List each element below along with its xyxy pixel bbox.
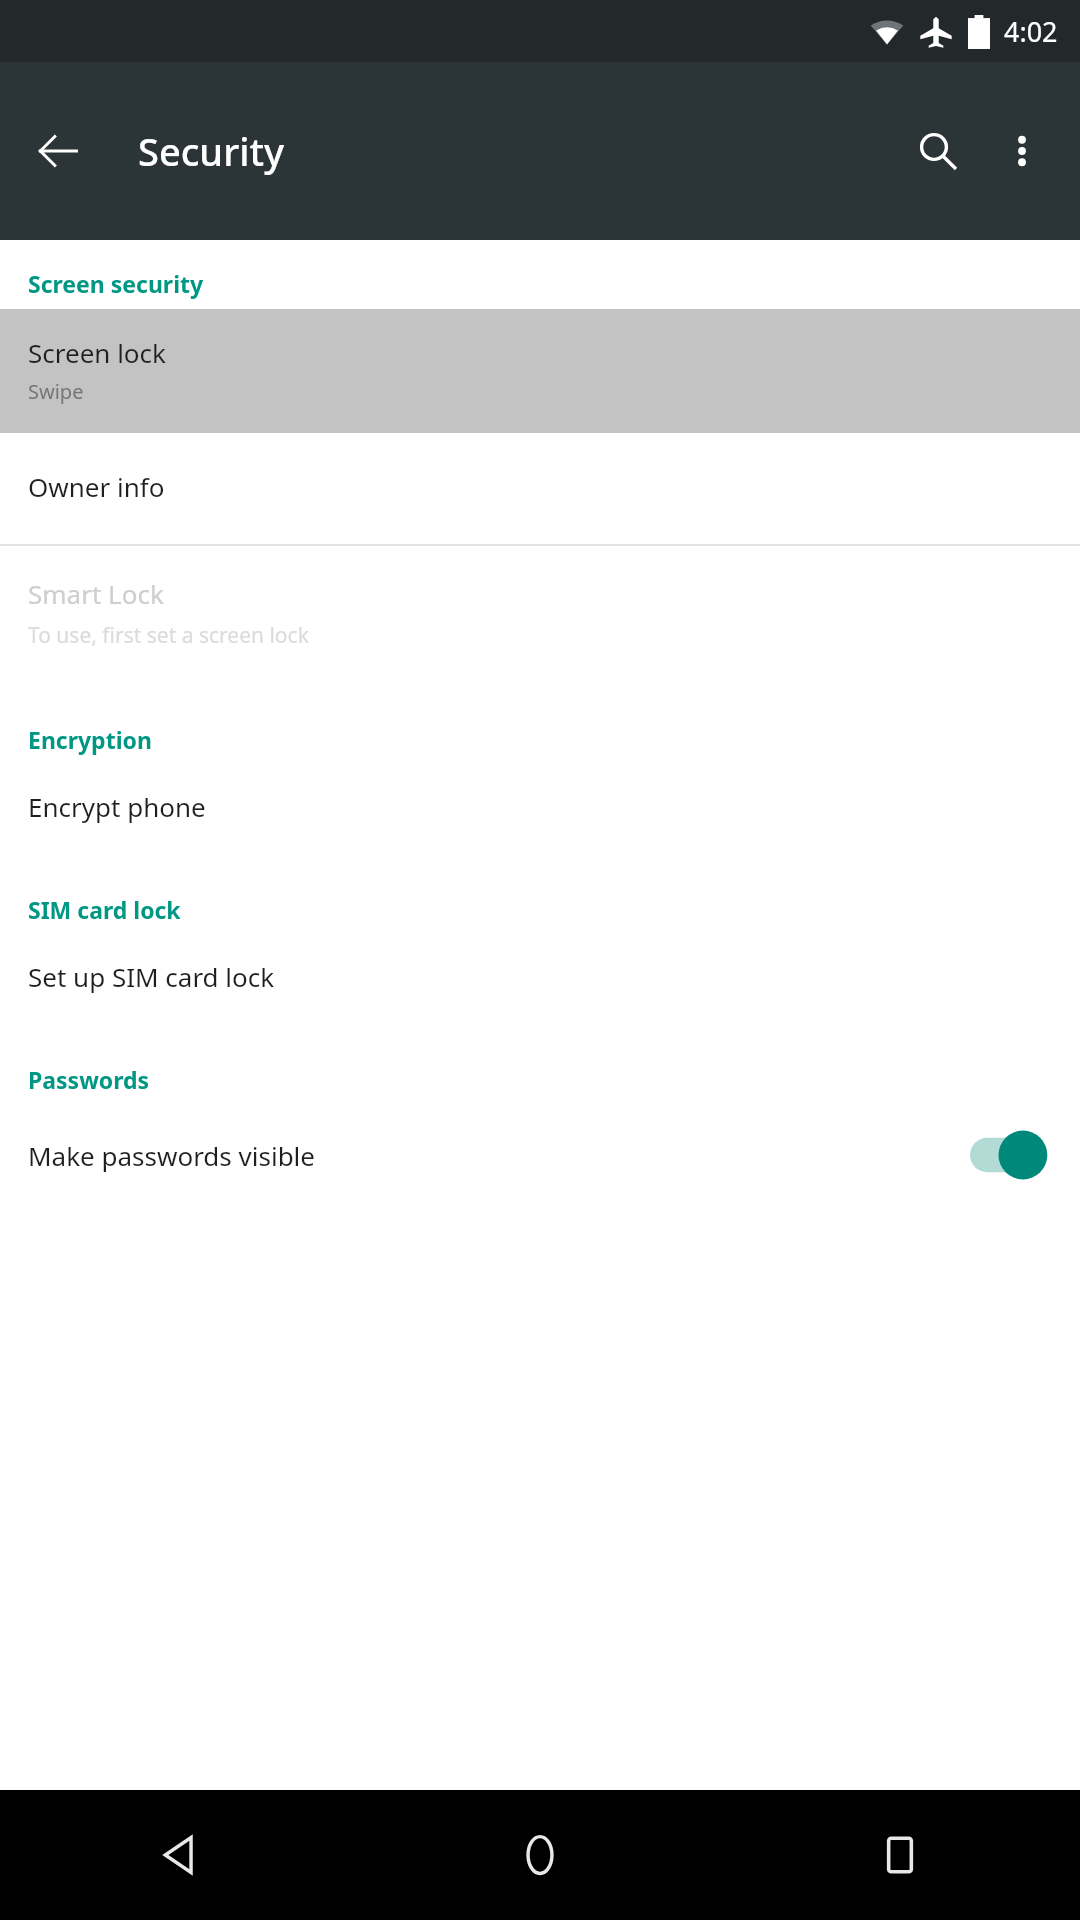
staticText: SIM card lock [28, 894, 181, 925]
button[interactable]: Make passwords visible [0, 1105, 1080, 1211]
button[interactable]: Encrypt phone [0, 765, 1080, 864]
button[interactable]: Owner info [0, 433, 1080, 544]
staticText: Security [138, 125, 896, 177]
button[interactable]: Make passwords visible toggle [970, 1129, 1052, 1181]
staticText: Smart Lock [28, 576, 164, 611]
staticText: Encryption [28, 724, 152, 755]
button[interactable]: Screen lock [0, 309, 1080, 433]
staticText: To use, first set a screen lock [28, 621, 309, 650]
staticText: Owner info [28, 469, 165, 504]
staticText: Screen lock [28, 335, 166, 370]
button[interactable]: Set up SIM card lock [0, 935, 1080, 1034]
button[interactable]: Back [0, 1790, 360, 1920]
staticText: Set up SIM card lock [28, 959, 275, 994]
staticText: Make passwords visible [28, 1138, 970, 1173]
staticText: Passwords [28, 1064, 150, 1095]
button[interactable]: Search [896, 109, 980, 193]
staticText: 4:02 [1004, 13, 1058, 50]
staticText: Encrypt phone [28, 789, 206, 824]
button[interactable]: Recent apps [720, 1790, 1080, 1920]
button[interactable]: More options [980, 109, 1064, 193]
staticText: Screen security [28, 268, 204, 299]
button[interactable]: Back [20, 113, 96, 189]
button[interactable]: Smart Lock [0, 546, 1080, 680]
staticText: Swipe [28, 378, 84, 405]
button[interactable]: Home [360, 1790, 720, 1920]
